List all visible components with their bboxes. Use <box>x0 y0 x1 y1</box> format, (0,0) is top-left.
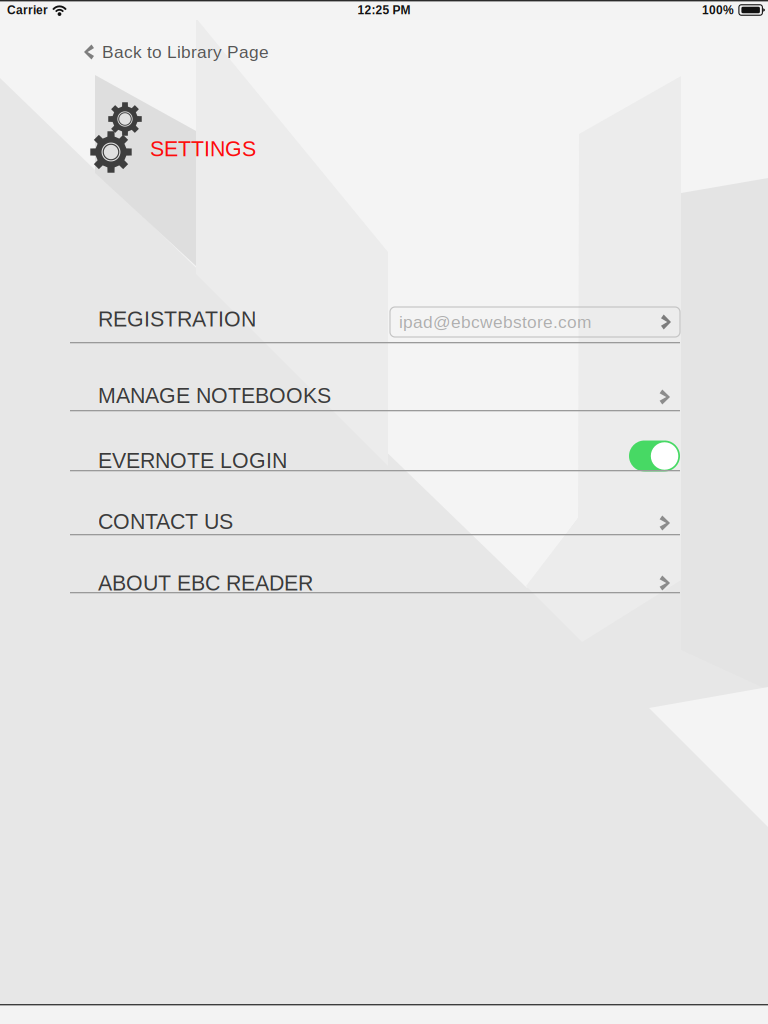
staticText: 100% <box>702 3 734 17</box>
staticText: ipad@ebcwebstore.com <box>399 312 591 332</box>
staticText: 12:25 PM <box>357 3 410 17</box>
staticText: CONTACT US <box>98 510 233 533</box>
button[interactable]: EVERNOTE LOGIN <box>70 430 680 472</box>
staticText: SETTINGS <box>150 137 256 161</box>
button[interactable]: ABOUT EBC READER <box>70 553 680 594</box>
staticText: ABOUT EBC READER <box>98 571 313 595</box>
button[interactable]: MANAGE NOTEBOOKS <box>70 365 680 412</box>
staticText: Back to Library Page <box>102 42 269 62</box>
button[interactable]: Back to Library Page <box>78 36 275 68</box>
button[interactable]: REGISTRATION <box>70 289 680 344</box>
button[interactable]: CONTACT US <box>70 491 680 536</box>
staticText: EVERNOTE LOGIN <box>98 449 287 472</box>
staticText: REGISTRATION <box>98 307 256 331</box>
staticText: Carrier <box>7 3 48 17</box>
staticText: MANAGE NOTEBOOKS <box>98 384 331 407</box>
